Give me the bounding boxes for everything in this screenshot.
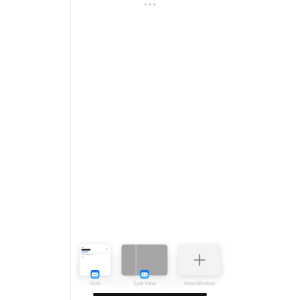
- staticText: Mail: [90, 280, 100, 287]
- button[interactable]: Split View: [121, 239, 167, 281]
- staticText: New Window: [184, 280, 215, 287]
- button[interactable]: Multitasking options: [136, 0, 164, 9]
- button[interactable]: Mail: [79, 239, 110, 281]
- button[interactable]: New Window: [178, 239, 220, 281]
- staticText: Split View: [133, 280, 155, 287]
